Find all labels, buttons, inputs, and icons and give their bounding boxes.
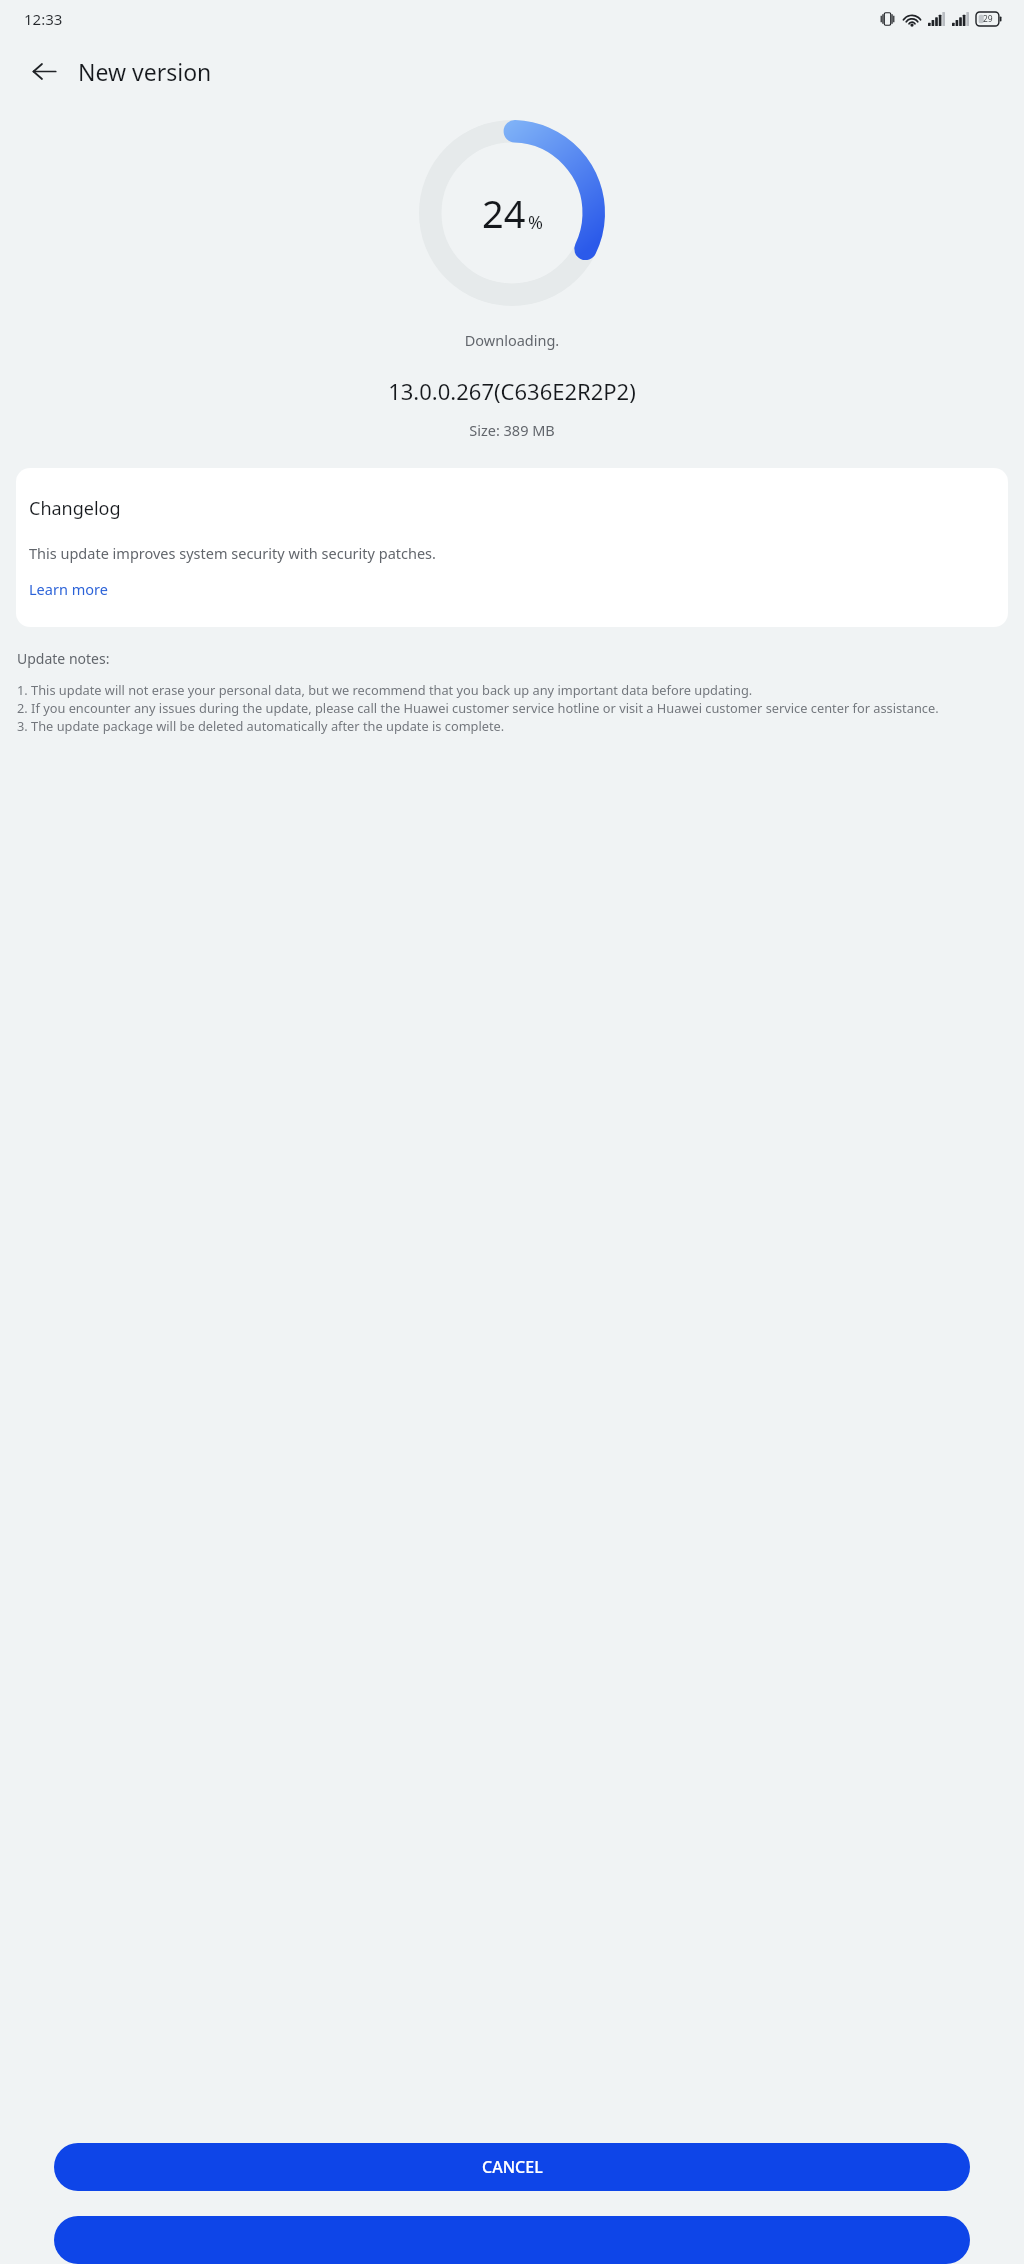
staticText: 12:33 [24,9,63,29]
button[interactable]: Changelog [16,468,1008,627]
staticText: 29 [983,13,993,25]
staticText: 13.0.0.267(C636E2R2P2) [0,376,1024,406]
staticText: New version [78,56,212,87]
staticText: Downloading. [0,330,1024,350]
button[interactable] [54,2216,970,2264]
staticText: 1. This update will not erase your perso… [17,681,939,735]
staticText: 24 [482,187,526,239]
staticText: Learn more [29,579,108,599]
button[interactable]: Back [22,49,66,93]
staticText: CANCEL [482,2156,543,2178]
button[interactable]: CANCEL [54,2143,970,2191]
staticText: Size: 389 MB [0,420,1024,440]
staticText: Update notes: [17,649,110,668]
staticText: % [528,210,543,235]
button[interactable]: Learn more [29,579,108,599]
staticText: This update improves system security wit… [29,543,436,563]
staticText: Changelog [29,496,121,521]
